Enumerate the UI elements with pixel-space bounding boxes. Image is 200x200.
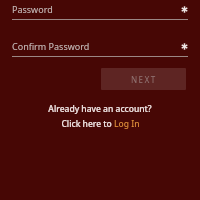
button[interactable]: Already have an account?	[0, 103, 200, 130]
staticText: Password	[12, 3, 53, 15]
button[interactable]: Confirm Password	[0, 40, 200, 57]
staticText: Confirm Password	[12, 40, 90, 52]
button[interactable]: Password	[0, 3, 200, 20]
staticText: NEXT	[131, 74, 157, 85]
other: Required	[181, 43, 188, 50]
button[interactable]: NEXT	[101, 68, 186, 90]
other: Required	[181, 6, 188, 13]
staticText: Already have an account?	[48, 103, 152, 115]
staticText: Click here to Log In	[61, 118, 140, 130]
